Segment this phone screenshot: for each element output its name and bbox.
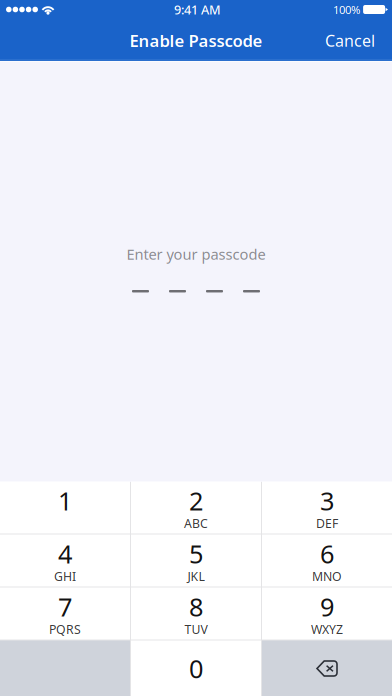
button[interactable]: 4 <box>0 534 130 586</box>
staticText: Enter your passcode <box>126 244 265 264</box>
staticText: 9 <box>320 589 334 624</box>
staticText: 3 <box>320 483 334 518</box>
button[interactable]: Cancel <box>308 20 392 61</box>
button[interactable]: 0 <box>131 640 261 696</box>
button[interactable]: 7 <box>0 587 130 639</box>
staticText: Enable Passcode <box>129 29 262 52</box>
staticText: ABC <box>184 515 208 532</box>
staticText: JKL <box>187 568 204 585</box>
button[interactable]: 5 <box>131 534 261 586</box>
staticText: 1 <box>58 483 72 518</box>
staticText: TUV <box>184 621 207 638</box>
staticText: 6 <box>320 536 334 571</box>
staticText: WXYZ <box>311 621 343 638</box>
button[interactable]: 2 <box>131 481 261 533</box>
staticText: 7 <box>58 589 72 624</box>
button[interactable]: 6 <box>262 534 392 586</box>
staticText: Cancel <box>325 30 375 51</box>
button[interactable]: 8 <box>131 587 261 639</box>
staticText: 4 <box>58 536 72 571</box>
staticText: GHI <box>54 568 76 585</box>
staticText: 0 <box>189 651 203 686</box>
button[interactable]: Delete <box>262 640 392 696</box>
staticText: MNO <box>312 568 342 585</box>
staticText: PQRS <box>49 621 81 638</box>
staticText: 9:41 AM <box>174 1 221 18</box>
button[interactable]: 3 <box>262 481 392 533</box>
staticText: 2 <box>189 483 203 518</box>
button[interactable]: 9 <box>262 587 392 639</box>
button[interactable]: 1 <box>0 481 130 533</box>
staticText: DEF <box>316 515 338 532</box>
staticText: 100% <box>333 2 360 17</box>
staticText: 8 <box>189 589 203 624</box>
staticText: 5 <box>189 536 203 571</box>
